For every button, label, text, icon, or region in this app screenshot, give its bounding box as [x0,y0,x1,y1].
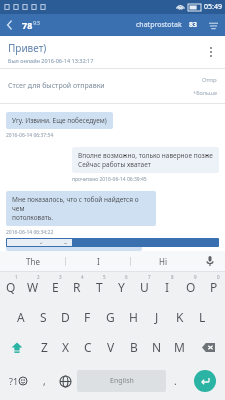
button[interactable]: Change language [54,362,77,400]
staticText: L [199,309,206,325]
button[interactable]: 2 [22,272,44,302]
staticText: 4 [81,274,84,280]
button[interactable]: L [191,302,214,332]
button[interactable]: B [122,332,145,362]
staticText: Привет) [8,41,47,55]
button[interactable]: K [168,302,191,332]
staticText: 7 [148,274,151,280]
button[interactable]: ?1 [0,362,35,400]
button[interactable]: Shift [0,332,33,362]
button[interactable]: English [77,370,166,392]
staticText: T [96,279,103,295]
staticText: N [152,339,162,355]
button[interactable]: Вполне возможно, только наверное позже [72,147,219,173]
staticText: . [174,374,177,388]
button[interactable]: V [99,332,122,362]
staticText: 2016-06-14 06:34:22 [6,229,54,236]
staticText: Мне показалось, что с тобой найдется о ч… [12,195,150,213]
staticText: W [27,279,39,295]
staticText: 78 [22,19,33,31]
staticText: Угу. Извини. Еще побеседуем) [12,116,107,125]
button[interactable]: C [77,332,99,362]
button[interactable]: 6 [110,272,133,302]
button[interactable]: The [0,251,65,271]
button[interactable]: , [35,362,54,400]
button[interactable]: Я администратор этого чата, очевидно [6,242,142,251]
staticText: Q [6,279,16,295]
staticText: D [61,309,70,325]
button[interactable]: Enter [185,362,225,400]
button[interactable]: Привет) [0,36,225,68]
staticText: 1 [15,274,18,280]
staticText: потолковать. [12,213,54,222]
staticText: Z [41,339,48,355]
staticText: G [106,309,115,325]
staticText: 2 [37,274,40,280]
button[interactable]: 7 [133,272,156,302]
staticText: X [62,339,70,355]
staticText: I [165,279,170,295]
button[interactable]: G [99,302,122,332]
staticText: 83 [189,20,198,30]
staticText: 8 [171,274,174,280]
staticText: Hi [159,256,167,267]
staticText: 3 [59,274,62,280]
staticText: Сейчас работы хватает [78,160,151,169]
button[interactable]: 8 [156,272,179,302]
button[interactable]: Back [0,15,20,35]
staticText: Y [118,279,125,295]
button[interactable]: Menu [205,17,221,33]
staticText: Был онлайн 2016-06-14 13:32:17 [8,57,94,64]
button[interactable]: 4 [66,272,88,302]
button[interactable]: 1 [0,272,22,302]
button[interactable]: Угу. Извини. Еще побеседуем) [6,112,113,129]
staticText: B [130,339,138,355]
button[interactable]: F [76,302,99,332]
staticText: 2016-06-14 06:37:54 [6,132,54,139]
staticText: chatprostotak [136,20,182,30]
button[interactable]: J [145,302,168,332]
button[interactable]: Стсег для быстрой отправки [0,69,225,103]
button[interactable]: Backspace [191,332,225,362]
staticText: , [43,374,46,388]
button[interactable]: X [55,332,77,362]
button[interactable]: More options [201,42,221,62]
staticText: Отпр [202,76,217,84]
button[interactable]: S [32,302,54,332]
staticText: K [176,309,184,325]
button[interactable]: M [168,332,191,362]
staticText: J [155,309,159,325]
button[interactable]: новые сообщения: 3 [7,239,72,246]
button[interactable]: Hi [131,251,195,271]
button[interactable]: N [145,332,168,362]
staticText: 9 [194,274,197,280]
button[interactable]: 3 [44,272,66,302]
button[interactable]: . [166,362,185,400]
staticText: E [52,279,59,295]
button[interactable]: 9 [179,272,202,302]
staticText: I [97,256,100,267]
button[interactable]: A [10,302,32,332]
staticText: +Больше [193,89,217,96]
staticText: C [84,339,92,355]
staticText: P [210,279,218,295]
staticText: F [84,309,91,325]
staticText: 0 [217,274,220,280]
button[interactable]: Z [33,332,55,362]
button[interactable]: H [122,302,145,332]
staticText: R [73,279,81,295]
staticText: 5 [103,274,106,280]
button[interactable]: D [54,302,76,332]
button[interactable]: 0 [202,272,225,302]
button[interactable]: Мне показалось, что с тобой найдется о ч… [6,191,156,226]
staticText: S [40,309,47,325]
staticText: Стсег для быстрой отправки [8,81,193,91]
staticText: 93 [33,19,40,27]
button[interactable]: I [66,251,130,271]
button[interactable]: 5 [88,272,110,302]
button[interactable]: Voice input [195,251,225,271]
staticText: The [26,256,40,267]
staticText: ?1 [9,375,19,387]
staticText: A [17,309,25,325]
